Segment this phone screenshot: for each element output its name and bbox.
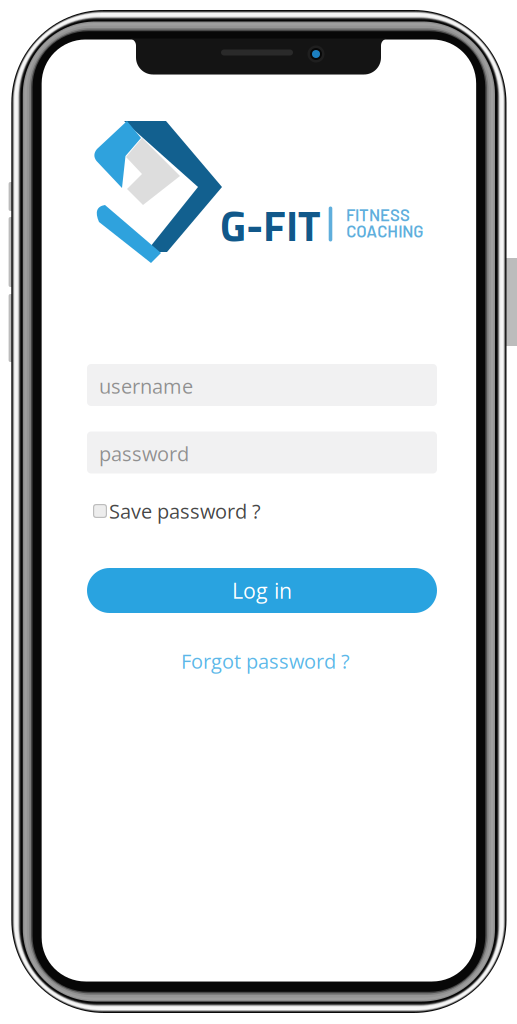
staticText: Log in xyxy=(232,576,292,605)
staticText: username xyxy=(99,372,193,400)
staticText: COACHING xyxy=(346,221,423,241)
staticText: Forgot password ? xyxy=(181,647,350,675)
staticText: Save password ? xyxy=(109,497,261,525)
button[interactable]: Log in xyxy=(87,568,437,613)
button[interactable]: Save password ? xyxy=(92,497,272,525)
button[interactable]: Forgot password ? xyxy=(175,641,356,681)
staticText: password xyxy=(99,440,189,467)
staticText: G-FIT xyxy=(220,193,320,257)
staticText: FITNESS xyxy=(346,204,410,224)
